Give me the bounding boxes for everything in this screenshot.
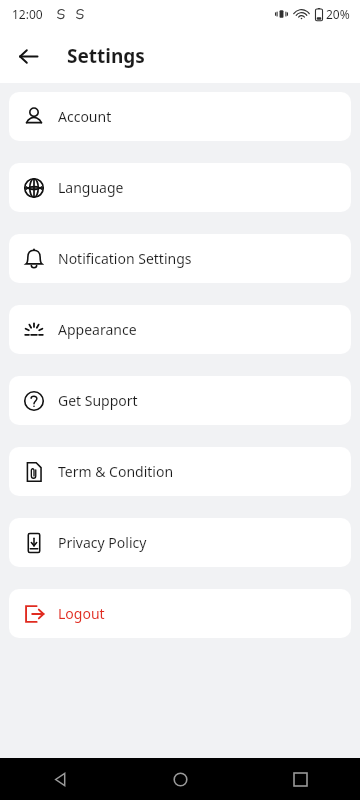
staticText: Logout [58,604,105,623]
staticText: 12:00 [12,6,43,22]
button[interactable]: Back [12,40,44,72]
button[interactable]: Term & Condition [9,447,351,496]
staticText: Privacy Policy [58,533,147,552]
button[interactable]: Back [0,758,120,800]
button[interactable]: Privacy Policy [9,518,351,567]
button[interactable]: Appearance [9,305,351,354]
staticText: Appearance [58,320,137,339]
staticText: 20% [326,6,350,22]
button[interactable]: Account [9,92,351,141]
staticText: Get Support [58,391,138,410]
button[interactable]: Recent apps [240,758,360,800]
button[interactable]: Home [120,758,240,800]
staticText: Language [58,178,124,197]
button[interactable]: Get Support [9,376,351,425]
staticText: Term & Condition [58,462,174,481]
staticText: Notification Settings [58,249,192,268]
button[interactable]: Notification Settings [9,234,351,283]
staticText: Settings [67,43,145,69]
button[interactable]: Logout [9,589,351,638]
staticText: Account [58,107,112,126]
button[interactable]: Language [9,163,351,212]
